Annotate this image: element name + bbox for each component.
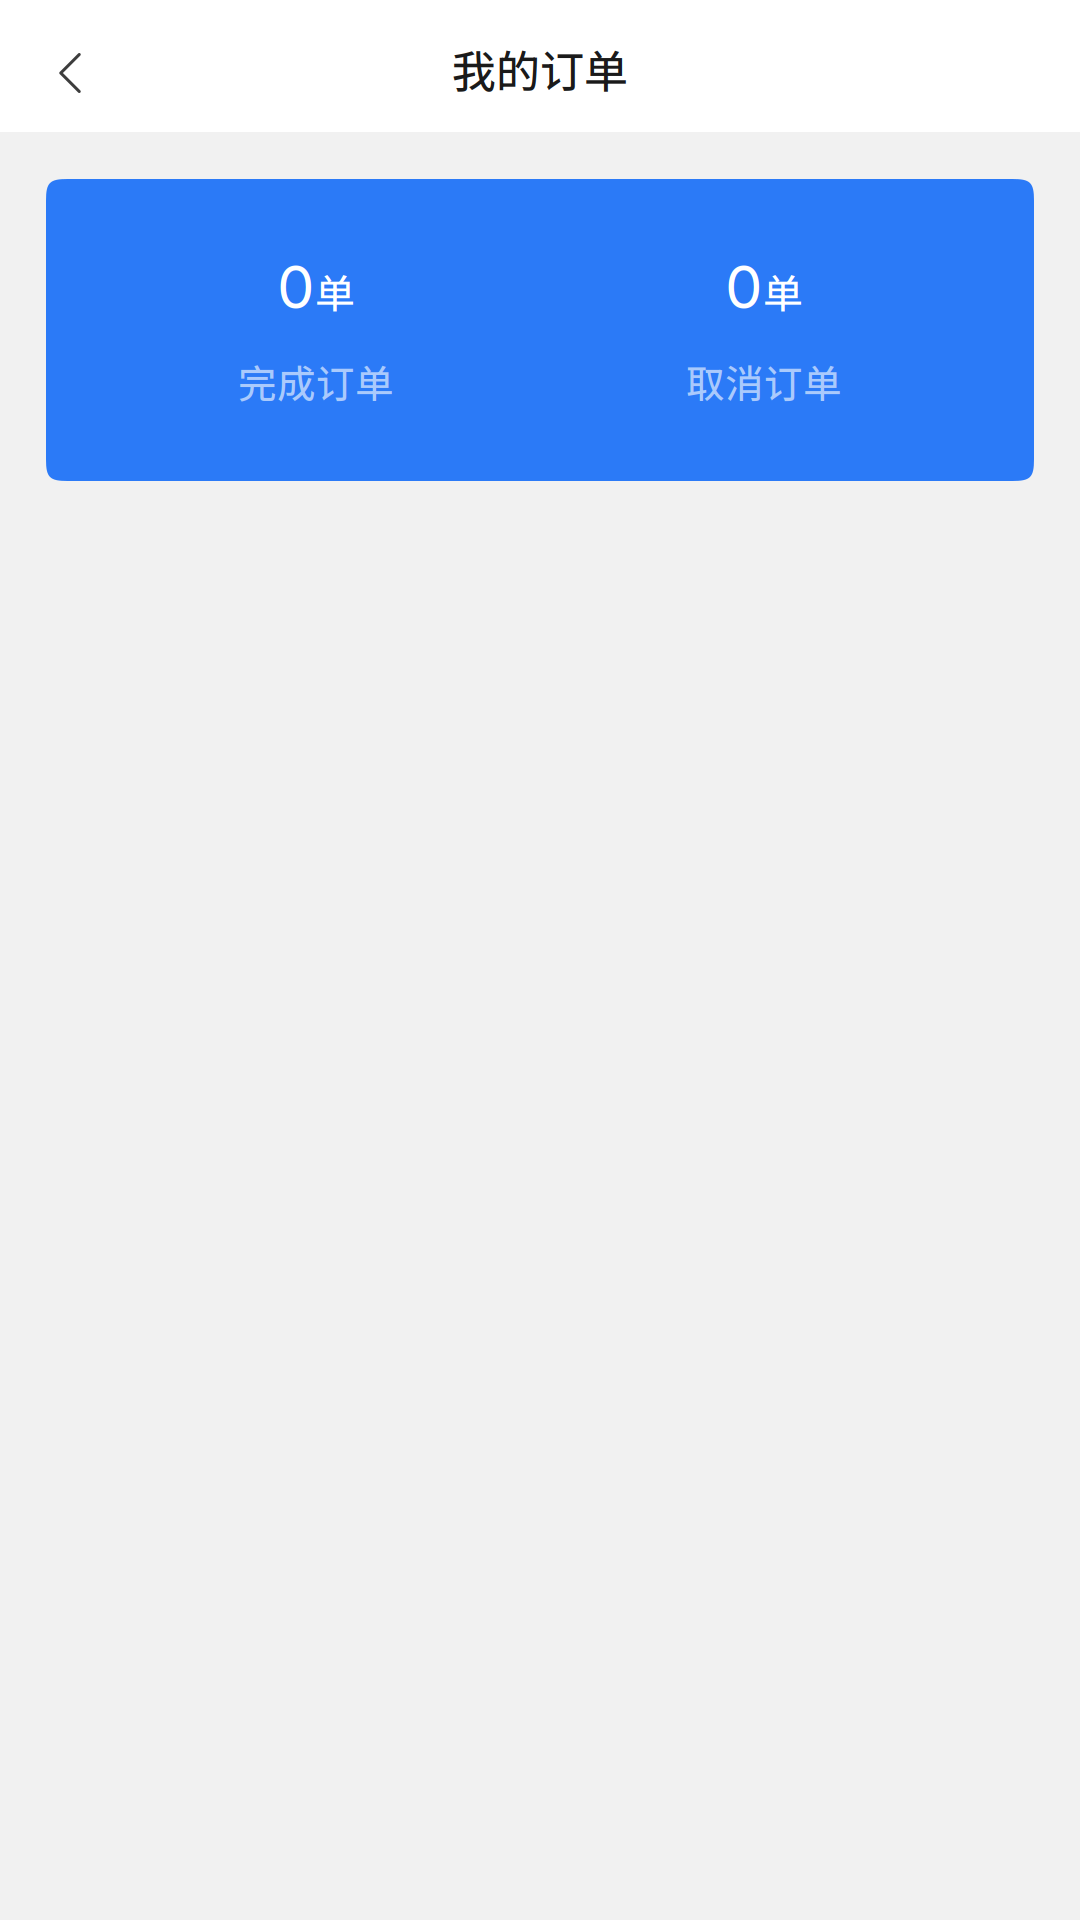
staticText: 0 [725,251,763,323]
staticText: 取消订单 [686,353,842,409]
staticText: 0 [277,251,315,323]
staticText: 单 [315,262,355,320]
button[interactable]: 0单 取消订单 [540,179,1034,481]
button[interactable]: Back [0,0,140,132]
staticText: 完成订单 [238,353,394,409]
button[interactable]: 0单 完成订单 [46,179,540,481]
staticText: 我的订单 [452,37,628,100]
staticText: 单 [763,262,803,320]
